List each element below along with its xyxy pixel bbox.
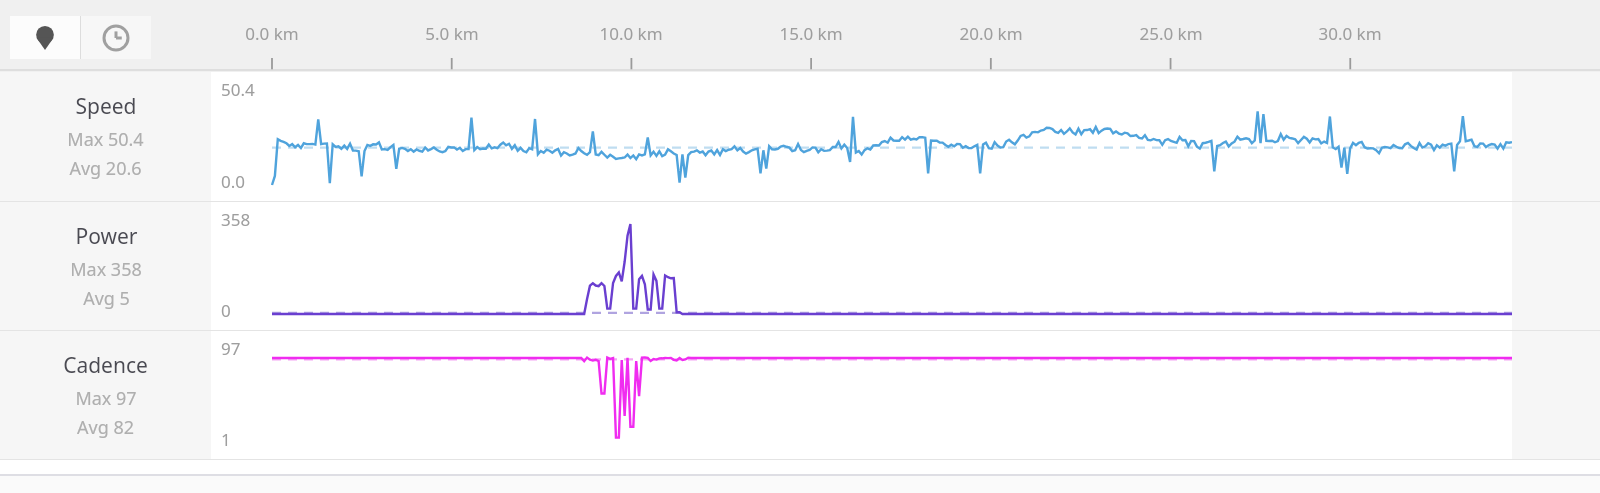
staticText: 25.0 km [1133,22,1209,45]
staticText: 0.0 km [234,22,310,45]
staticText: 20.0 km [953,22,1029,45]
staticText: 0 [221,299,231,322]
staticText: Cadence [63,351,148,380]
staticText: 97 [221,337,241,360]
staticText: 50.4 [221,78,255,101]
staticText: 358 [221,208,251,231]
button[interactable]: 50.4 [211,72,1600,201]
staticText: Max 97 [75,386,137,411]
staticText: Speed [75,92,137,121]
staticText: 15.0 km [773,22,849,45]
button[interactable]: Show by time [81,16,151,59]
button[interactable]: Power [0,202,211,330]
staticText: Max 50.4 [67,127,144,152]
staticText: Max 358 [70,257,142,282]
button[interactable]: Cadence [0,331,211,459]
staticText: Power [75,222,138,251]
staticText: 5.0 km [414,22,490,45]
staticText: 30.0 km [1312,22,1388,45]
staticText: Avg 20.6 [69,156,142,181]
button[interactable]: Show by distance [10,16,80,59]
button[interactable]: 358 [211,202,1600,330]
staticText: Avg 82 [77,415,134,440]
staticText: 1 [221,428,231,451]
staticText: 0.0 [221,170,246,193]
button[interactable]: 97 [211,331,1600,459]
staticText: Avg 5 [83,286,130,311]
staticText: 10.0 km [593,22,669,45]
button[interactable]: Speed [0,72,211,201]
